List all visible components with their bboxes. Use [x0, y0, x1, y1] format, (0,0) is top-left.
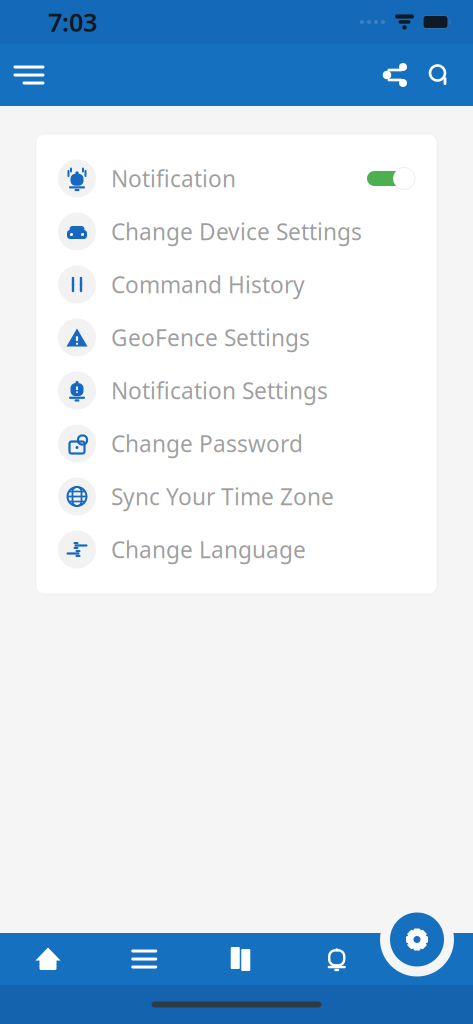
staticText: Change Device Settings: [111, 216, 362, 246]
staticText: 7:03: [48, 5, 97, 39]
button[interactable]: Search: [417, 53, 461, 97]
staticText: Notification: [111, 163, 236, 193]
button[interactable]: Change Password: [36, 417, 437, 470]
button[interactable]: Menu: [6, 52, 52, 98]
button[interactable]: Menu: [114, 934, 174, 984]
staticText: Change Password: [111, 428, 303, 458]
staticText: Command History: [111, 269, 305, 299]
button[interactable]: Map: [210, 934, 270, 984]
staticText: Sync Your Time Zone: [111, 481, 334, 511]
button[interactable]: GeoFence Settings: [36, 311, 437, 364]
button[interactable]: Share: [373, 53, 417, 97]
button[interactable]: Notification Settings: [36, 364, 437, 417]
button[interactable]: Notification: [36, 152, 437, 205]
button[interactable]: Command History: [36, 258, 437, 311]
button[interactable]: Sync Your Time Zone: [36, 470, 437, 523]
button[interactable]: Notifications: [307, 934, 367, 984]
button[interactable]: Change Language: [36, 523, 437, 576]
staticText: Change Language: [111, 534, 306, 564]
button[interactable]: Home: [18, 934, 78, 984]
staticText: GeoFence Settings: [111, 322, 310, 352]
button[interactable]: Change Device Settings: [36, 205, 437, 258]
button[interactable]: Settings: [390, 912, 444, 966]
staticText: Notification Settings: [111, 375, 328, 405]
